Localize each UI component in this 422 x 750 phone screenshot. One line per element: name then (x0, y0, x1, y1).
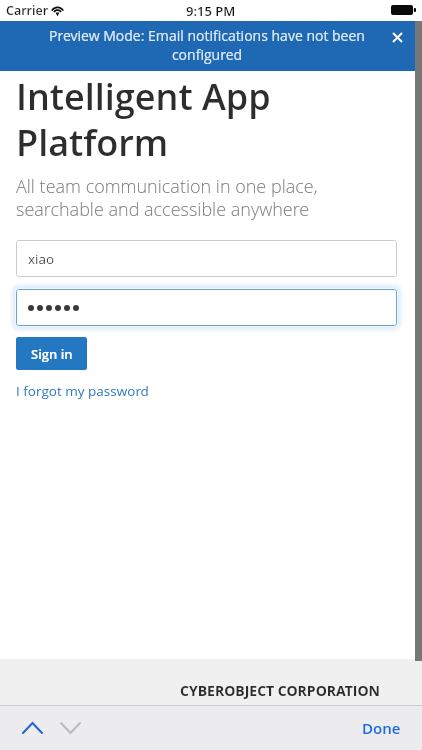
staticText: Intelligent App Platform (16, 72, 271, 167)
staticText: Sign in (31, 345, 73, 363)
staticText: All team communication in one place, sea… (16, 174, 318, 221)
button[interactable]: Next field (51, 706, 89, 750)
button[interactable]: Done (362, 718, 401, 738)
staticText: Done (362, 718, 401, 738)
button[interactable]: I forgot my password (16, 382, 149, 400)
staticText: CYBEROBJECT CORPORATION (180, 681, 380, 700)
staticText: Carrier (6, 2, 49, 19)
button[interactable]: Dismiss notice (381, 21, 413, 53)
button[interactable]: Sign in (16, 337, 87, 370)
staticText: Preview Mode: Email notifications have n… (49, 26, 365, 64)
staticText: I forgot my password (16, 382, 149, 400)
staticText: 9:15 PM (186, 2, 236, 20)
staticText: xiao (28, 250, 55, 268)
button[interactable]: xiao (16, 240, 397, 277)
button[interactable] (16, 289, 397, 326)
button[interactable]: Previous field (13, 706, 51, 750)
